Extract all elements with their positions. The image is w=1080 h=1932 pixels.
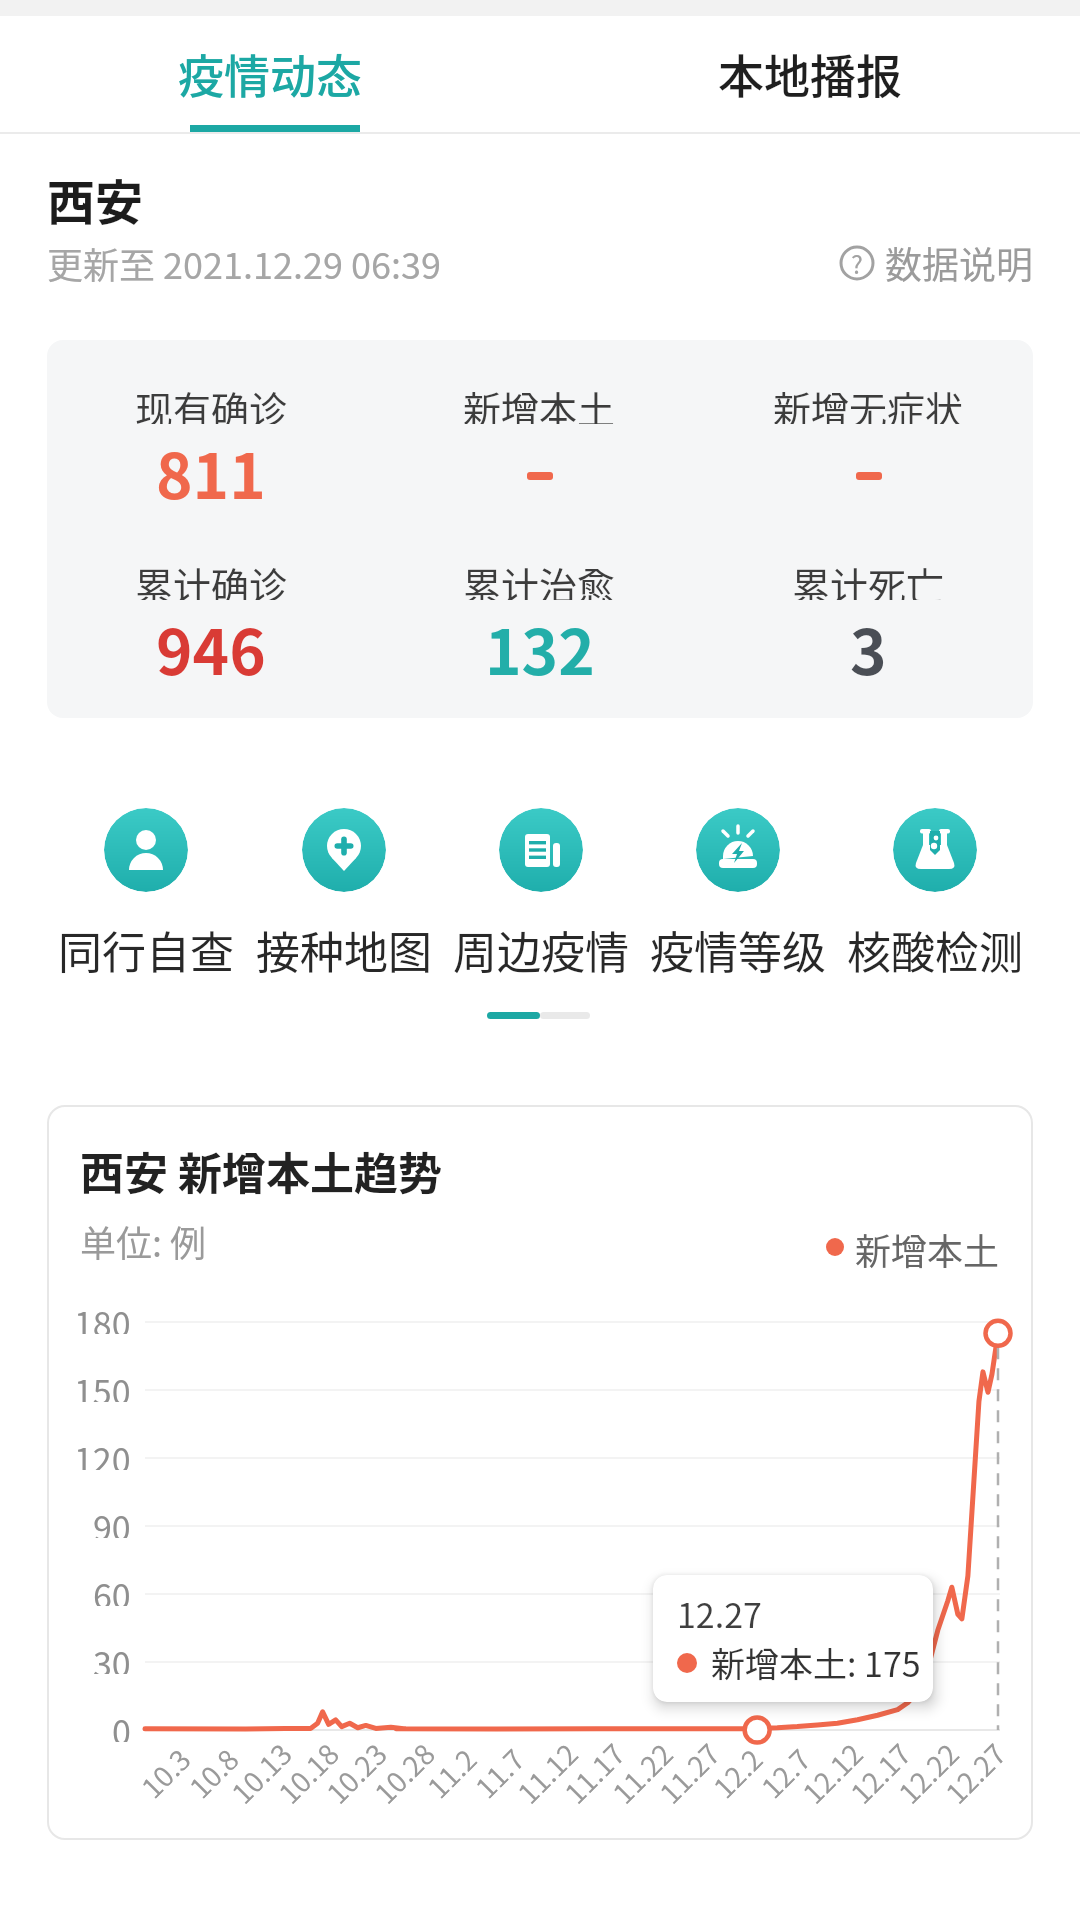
staticText: 12.2 (704, 1739, 765, 1800)
staticText: 本地播报 (718, 40, 902, 107)
button[interactable]: 新增本土 (375, 380, 704, 501)
staticText: 周边疫情 (453, 918, 629, 982)
staticText: 11.7 (466, 1739, 527, 1800)
button[interactable]: 新增无症状 (704, 380, 1033, 501)
button[interactable]: 累计治愈 (375, 556, 704, 677)
button[interactable]: 核酸检测 (836, 918, 1033, 982)
button[interactable]: 累计死亡 (704, 556, 1033, 677)
staticText: 新增本土 (463, 380, 616, 424)
staticText: 接种地图 (256, 918, 432, 982)
staticText: 11.17 (555, 1734, 627, 1806)
staticText: 90 (93, 1502, 131, 1538)
button[interactable] (893, 808, 977, 892)
button[interactable]: 现有确诊 (47, 380, 375, 501)
staticText: 10.18 (269, 1734, 341, 1806)
staticText: 10.28 (365, 1734, 437, 1806)
staticText: 新增无症状 (773, 380, 964, 424)
staticText: 累计治愈 (463, 556, 616, 600)
staticText: 11.12 (508, 1734, 580, 1806)
staticText: 11.27 (650, 1734, 722, 1806)
staticText: 同行自查 (58, 918, 234, 982)
staticText: 累计死亡 (792, 556, 945, 600)
staticText: 疫情动态 (178, 40, 362, 107)
staticText: 数据说明 (885, 236, 1033, 290)
button[interactable] (499, 808, 583, 892)
staticText: 12.27 (677, 1589, 762, 1638)
staticText: 10.13 (222, 1734, 294, 1806)
button[interactable]: 周边疫情 (442, 918, 639, 982)
staticText: 132 (485, 603, 595, 677)
staticText: 12.27 (936, 1734, 1008, 1806)
staticText: 12.7 (752, 1739, 813, 1800)
staticText: 10.23 (317, 1734, 389, 1806)
button[interactable]: 疫情动态 (0, 16, 540, 131)
staticText: 核酸检测 (847, 918, 1023, 982)
button[interactable]: 同行自查 (47, 918, 245, 982)
staticText: 60 (93, 1570, 131, 1606)
staticText: 疫情等级 (650, 918, 826, 982)
staticText: 811 (156, 427, 266, 501)
staticText: 新增本土 (855, 1223, 1000, 1275)
staticText: 180 (74, 1298, 131, 1334)
button[interactable] (104, 808, 188, 892)
button[interactable] (696, 808, 780, 892)
staticText: 西安 (47, 164, 144, 234)
button[interactable]: ? (839, 236, 1033, 290)
staticText: 10.3 (132, 1739, 193, 1800)
staticText: 150 (74, 1366, 131, 1402)
staticText: 12.17 (841, 1734, 913, 1806)
staticText: 11.22 (603, 1734, 675, 1806)
staticText: 30 (93, 1638, 131, 1674)
staticText: 10.8 (180, 1739, 241, 1800)
staticText: 现有确诊 (135, 380, 288, 424)
staticText: 12.12 (793, 1734, 865, 1806)
staticText: 单位: 例 (80, 1215, 207, 1267)
staticText: 西安 新增本土趋势 (80, 1139, 442, 1203)
button[interactable]: 本地播报 (540, 16, 1080, 131)
staticText: 新增本土: 175 (711, 1638, 921, 1687)
button[interactable]: 累计确诊 (47, 556, 375, 677)
button[interactable] (302, 808, 386, 892)
staticText: 0 (112, 1706, 131, 1742)
staticText: ? (851, 245, 863, 281)
button[interactable]: 疫情等级 (639, 918, 836, 982)
button[interactable]: 接种地图 (245, 918, 442, 982)
staticText: 3 (850, 603, 887, 677)
staticText: 11.2 (418, 1739, 479, 1800)
staticText: 12.22 (889, 1734, 961, 1806)
staticText: 946 (156, 603, 266, 677)
staticText: 更新至 2021.12.29 06:39 (47, 237, 441, 289)
staticText: 累计确诊 (135, 556, 288, 600)
staticText: 120 (74, 1434, 131, 1470)
